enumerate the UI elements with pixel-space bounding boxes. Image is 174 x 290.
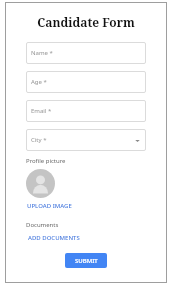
button[interactable]: Name *: [26, 42, 146, 64]
staticText: SUBMIT: [75, 257, 98, 265]
button[interactable]: Profile picture: [26, 169, 55, 198]
staticText: Email *: [31, 107, 52, 115]
button[interactable]: Email *: [26, 100, 146, 122]
button[interactable]: ADD DOCUMENTS: [28, 234, 80, 242]
staticText: Documents: [26, 221, 59, 229]
staticText: Profile picture: [26, 157, 66, 165]
staticText: Age *: [31, 78, 47, 86]
staticText: Name *: [31, 49, 53, 57]
staticText: Candidate Form: [26, 14, 146, 30]
staticText: City *: [31, 136, 47, 144]
button[interactable]: SUBMIT: [65, 253, 107, 268]
staticText: UPLOAD IMAGE: [27, 202, 72, 210]
button[interactable]: UPLOAD IMAGE: [27, 202, 72, 210]
staticText: ADD DOCUMENTS: [28, 234, 80, 242]
button[interactable]: City *: [26, 129, 146, 151]
button[interactable]: Age *: [26, 71, 146, 93]
